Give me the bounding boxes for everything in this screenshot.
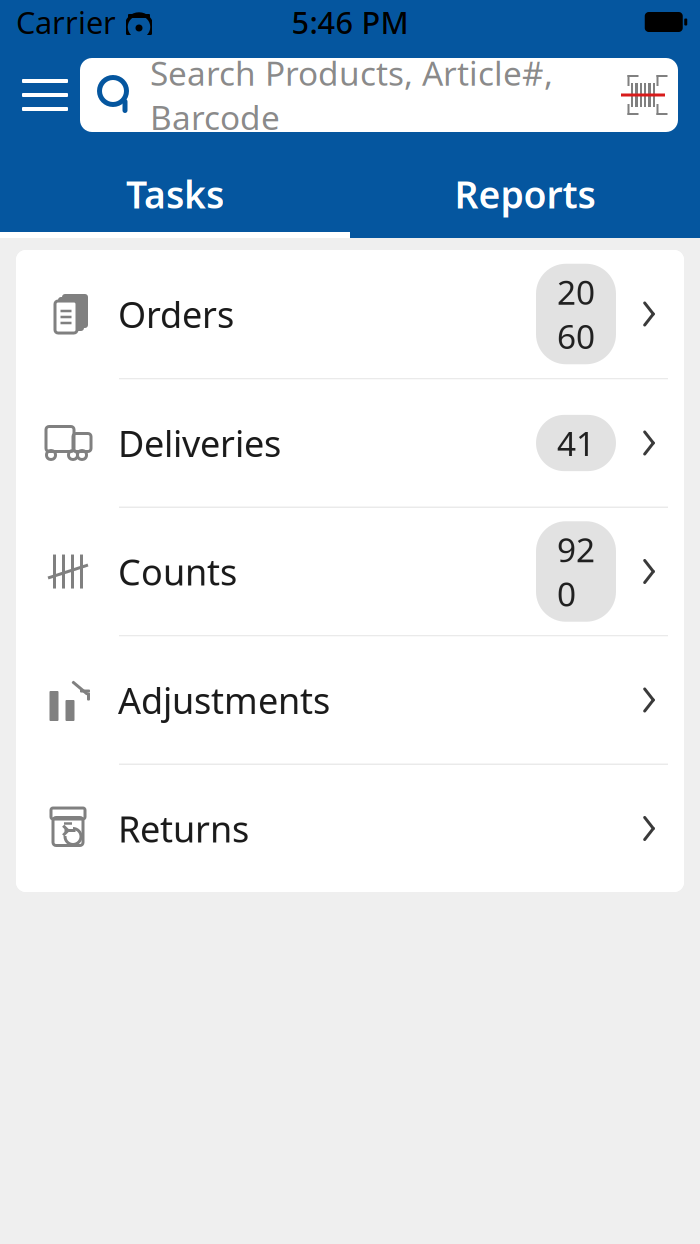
staticText: Returns	[118, 805, 249, 852]
staticText: Reports	[454, 169, 595, 219]
button[interactable]: Counts	[16, 508, 684, 635]
staticText: 5:46 PM	[291, 2, 408, 42]
staticText: 2060	[557, 270, 595, 358]
button[interactable]: Orders	[16, 250, 684, 378]
staticText: Orders	[118, 290, 234, 338]
staticText: Adjustments	[118, 676, 330, 724]
button[interactable]: Search Products, Article#, Barcode	[80, 58, 678, 132]
button[interactable]: Tasks	[0, 156, 350, 238]
staticText: Search Products, Article#, Barcode	[150, 51, 553, 139]
button[interactable]: Adjustments	[16, 636, 684, 763]
button[interactable]: Returns	[16, 765, 684, 892]
staticText: Counts	[118, 548, 237, 595]
staticText: 920	[557, 527, 595, 616]
button[interactable]: Reports	[350, 156, 700, 238]
staticText: 41	[557, 421, 595, 465]
staticText: Carrier	[16, 2, 116, 42]
button[interactable]: Menu	[10, 60, 80, 130]
staticText: Deliveries	[118, 419, 281, 467]
staticText: Tasks	[126, 169, 224, 219]
button[interactable]: Deliveries	[16, 379, 684, 506]
